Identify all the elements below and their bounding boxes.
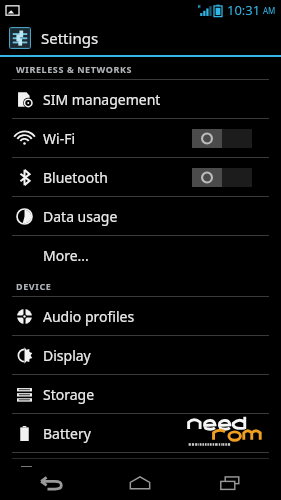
button[interactable]: Storage	[0, 375, 281, 413]
button[interactable]: Back	[34, 466, 68, 500]
staticText: Bluetooth	[43, 168, 108, 187]
staticText: Settings	[41, 28, 99, 48]
staticText: More...	[43, 246, 89, 265]
staticText: Data usage	[43, 207, 118, 226]
button[interactable]: Bluetooth	[0, 158, 281, 196]
button[interactable]: Display	[0, 336, 281, 374]
staticText: 10:31	[227, 1, 261, 19]
staticText: DEVICE	[16, 280, 52, 292]
button[interactable]: Home	[123, 466, 157, 500]
staticText: Battery	[43, 424, 91, 443]
staticText: Audio profiles	[43, 307, 135, 326]
staticText: Storage	[43, 385, 95, 404]
button[interactable]: Audio profiles	[0, 297, 281, 335]
button[interactable]: Recent apps	[213, 466, 247, 500]
button[interactable]: Data usage	[0, 197, 281, 235]
button[interactable]: Toggle off	[192, 168, 252, 187]
staticText: Wi-Fi	[43, 129, 76, 148]
button[interactable]: More...	[0, 236, 281, 274]
staticText: WIRELESS & NETWORKS	[16, 63, 133, 75]
staticText: SIM management	[43, 90, 161, 109]
staticText: AM	[263, 5, 276, 16]
button[interactable]: Toggle off	[192, 129, 252, 148]
staticText: Display	[43, 346, 91, 365]
button[interactable]: Wi-Fi	[0, 119, 281, 157]
button[interactable]: Battery	[0, 414, 281, 452]
button[interactable]: SIM management	[0, 80, 281, 118]
button[interactable]: Settings app icon	[9, 27, 31, 49]
